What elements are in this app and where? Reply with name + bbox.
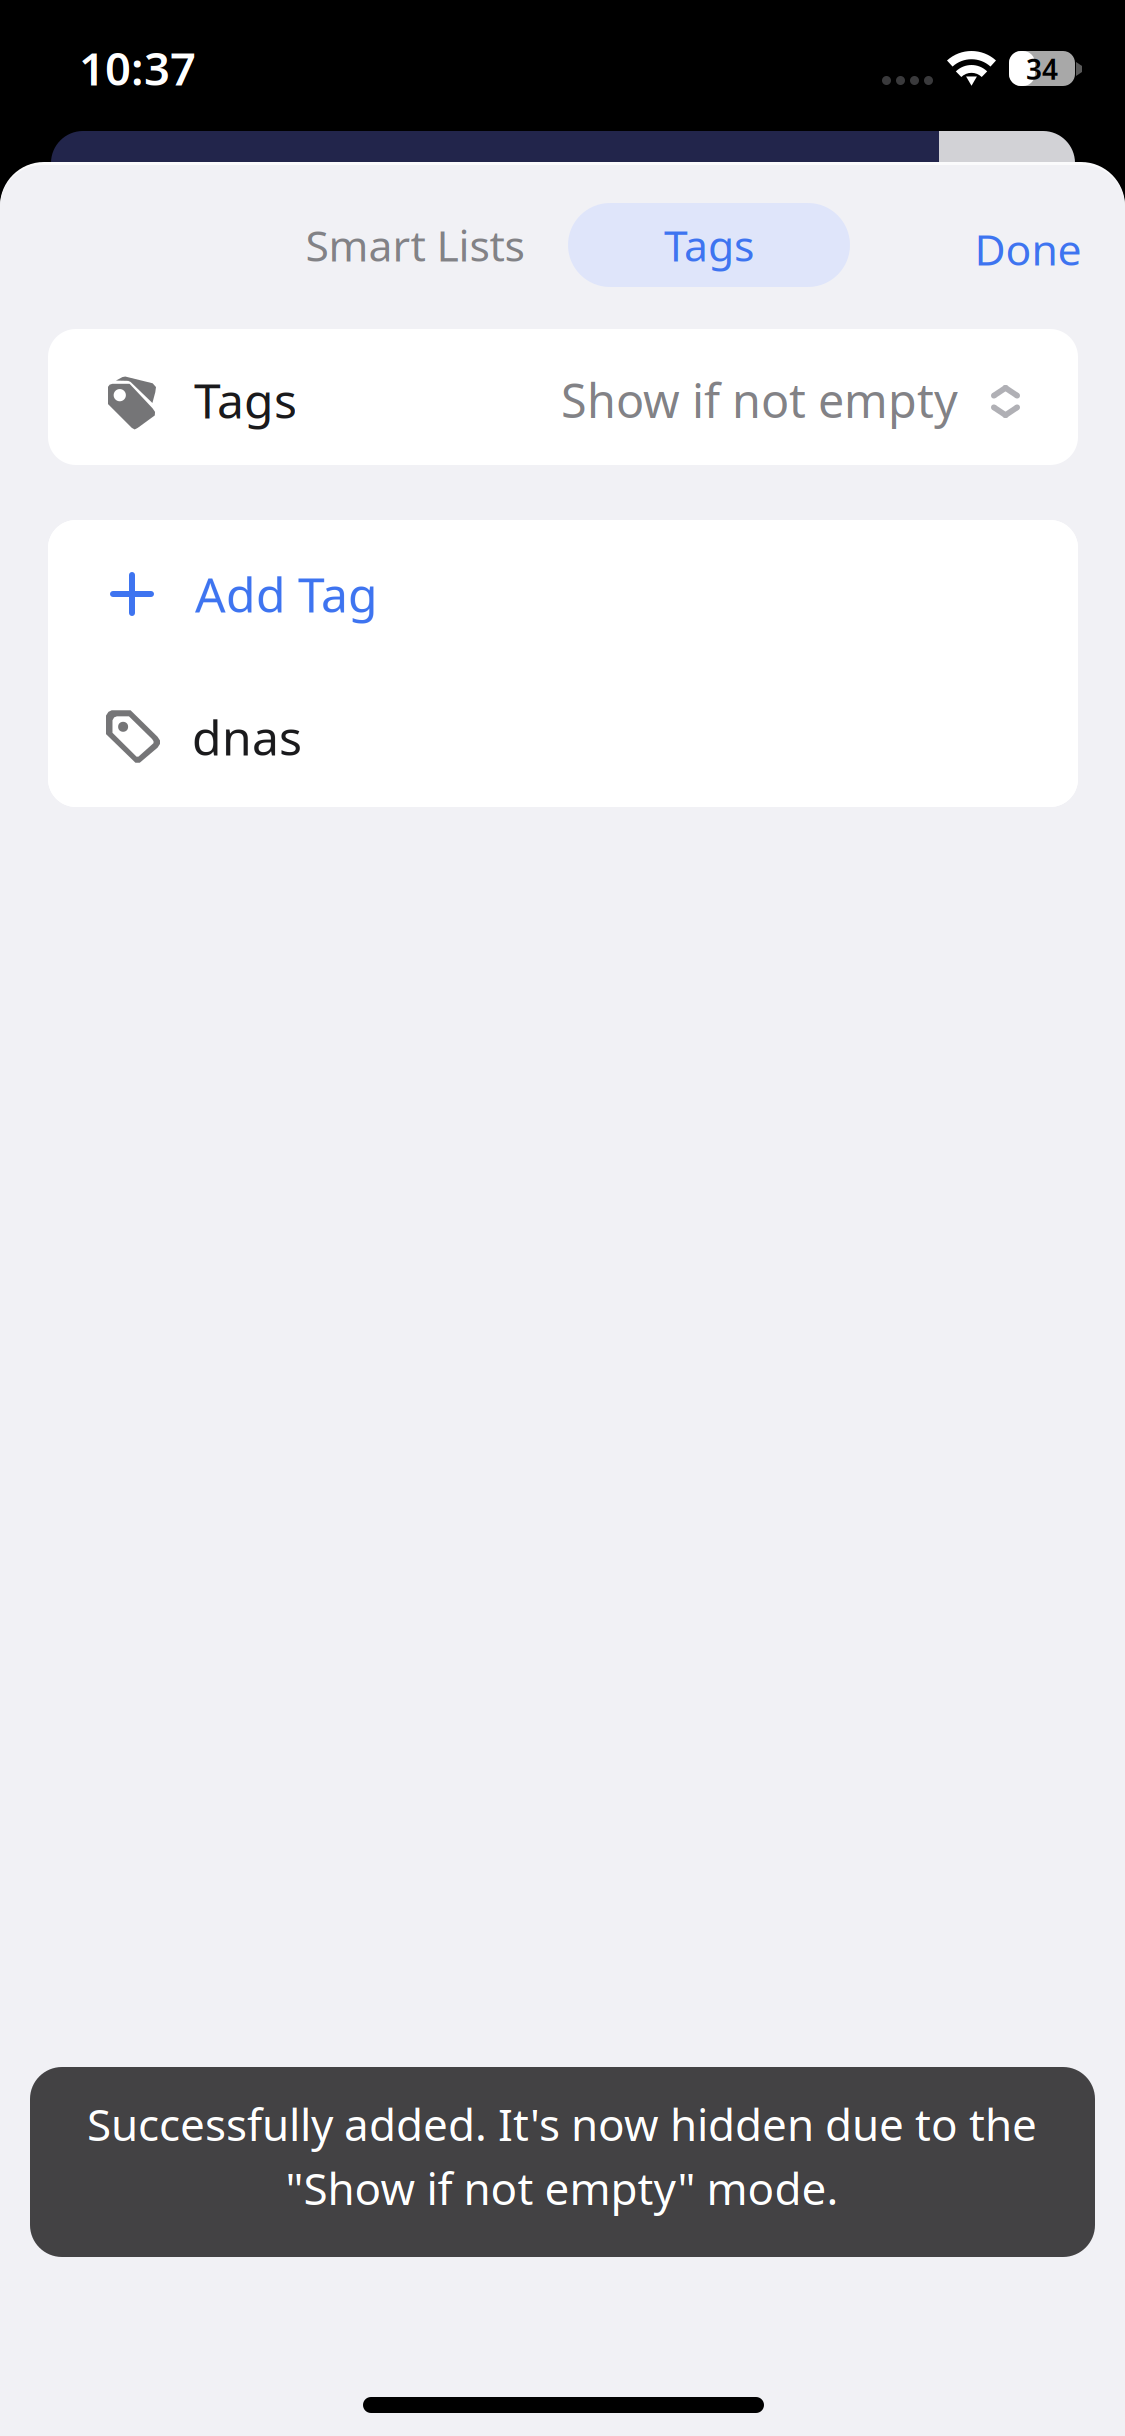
staticText: Smart Lists — [305, 216, 524, 274]
staticText: 10:37 — [79, 37, 196, 99]
staticText: Successfully added. It's now hidden due … — [87, 2094, 1037, 2154]
staticText: Tags — [664, 216, 754, 274]
staticText: Done — [974, 220, 1081, 278]
staticText: Tags — [194, 367, 297, 433]
staticText: "Show if not empty" mode. — [285, 2158, 838, 2218]
button[interactable]: dnas — [48, 664, 1078, 807]
button[interactable]: Add Tag — [48, 520, 1078, 663]
staticText: dnas — [192, 704, 302, 770]
button[interactable]: Done — [933, 207, 1123, 291]
staticText: Add Tag — [195, 561, 378, 627]
staticText: Show if not empty — [561, 368, 958, 432]
button[interactable]: Tags — [568, 203, 850, 287]
button[interactable]: Tags, Show if not empty — [48, 329, 1078, 465]
staticText: 34 — [1026, 50, 1058, 88]
button[interactable]: Smart Lists — [275, 203, 555, 287]
